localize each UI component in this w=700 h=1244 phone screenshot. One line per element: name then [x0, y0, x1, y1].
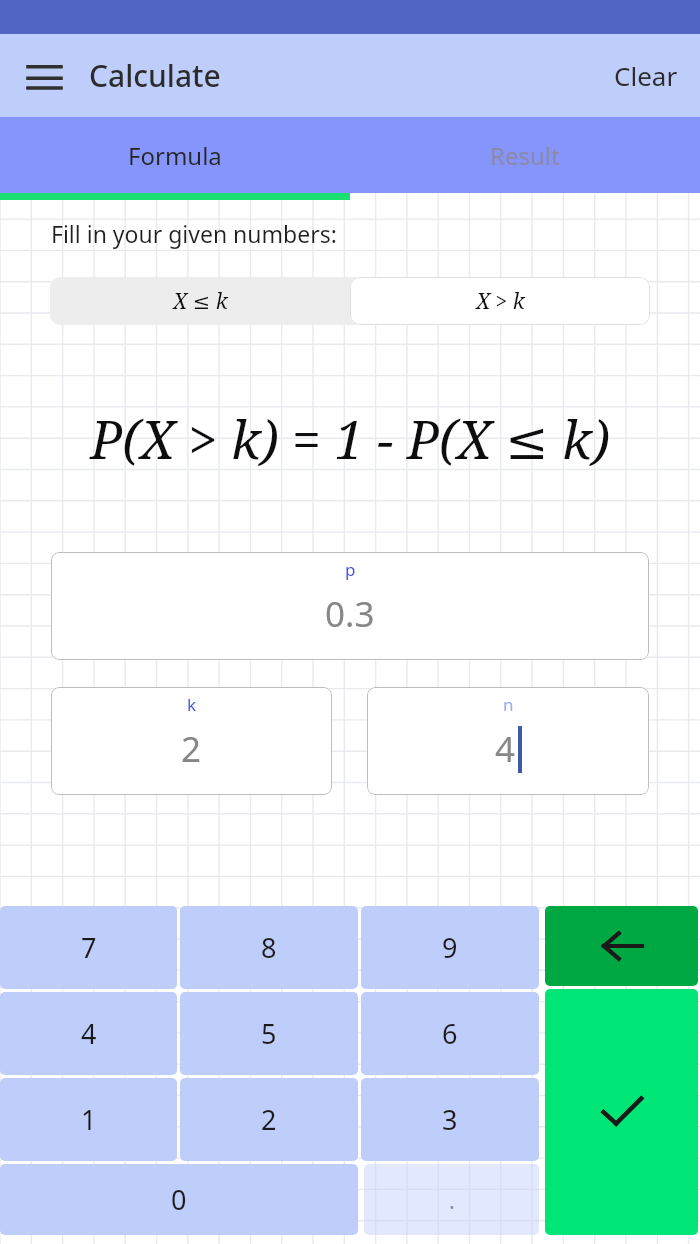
staticText: Result: [490, 139, 560, 172]
staticText: n: [503, 693, 514, 716]
button[interactable]: Backspace: [545, 906, 698, 986]
button[interactable]: 6: [361, 992, 539, 1075]
staticText: X ≤ k: [173, 287, 228, 316]
button[interactable]: 4: [0, 992, 177, 1075]
button[interactable]: 3: [361, 1078, 539, 1161]
button[interactable]: Menu: [14, 46, 74, 106]
button[interactable]: 2: [180, 1078, 358, 1161]
button[interactable]: 8: [180, 906, 358, 989]
button[interactable]: X > k: [350, 277, 650, 325]
staticText: 4: [81, 1015, 97, 1052]
staticText: 6: [442, 1015, 458, 1052]
staticText: 3: [442, 1101, 458, 1138]
staticText: Calculate: [89, 55, 221, 96]
staticText: 0: [171, 1181, 187, 1218]
button[interactable]: 0: [0, 1164, 358, 1235]
staticText: Clear: [614, 58, 678, 93]
button[interactable]: 9: [361, 906, 539, 989]
staticText: p: [345, 558, 356, 581]
staticText: Fill in your given numbers:: [51, 218, 337, 249]
staticText: k: [187, 693, 197, 716]
staticText: P(X > k) = 1 − P(X ≤ k): [90, 403, 610, 474]
button[interactable]: p: [51, 552, 649, 660]
staticText: X > k: [476, 287, 525, 316]
staticText: Formula: [128, 139, 222, 172]
button[interactable]: Result: [350, 117, 700, 193]
button[interactable]: Confirm: [545, 989, 698, 1235]
button[interactable]: Formula: [0, 117, 350, 193]
button[interactable]: Clear: [592, 44, 700, 107]
button[interactable]: 5: [180, 992, 358, 1075]
button[interactable]: X ≤ k: [50, 277, 350, 325]
button[interactable]: n: [367, 687, 649, 795]
staticText: 5: [261, 1015, 277, 1052]
staticText: 0.3: [325, 590, 375, 638]
button[interactable]: 7: [0, 906, 177, 989]
staticText: 2: [181, 725, 202, 773]
staticText: .: [449, 1185, 455, 1215]
staticText: 1: [81, 1101, 97, 1138]
button[interactable]: k: [51, 687, 332, 795]
staticText: 4: [495, 725, 516, 773]
staticText: 7: [81, 929, 97, 966]
staticText: 8: [261, 929, 277, 966]
button[interactable]: 1: [0, 1078, 177, 1161]
staticText: 9: [442, 929, 458, 966]
staticText: 2: [261, 1101, 277, 1138]
button[interactable]: .: [364, 1164, 539, 1235]
